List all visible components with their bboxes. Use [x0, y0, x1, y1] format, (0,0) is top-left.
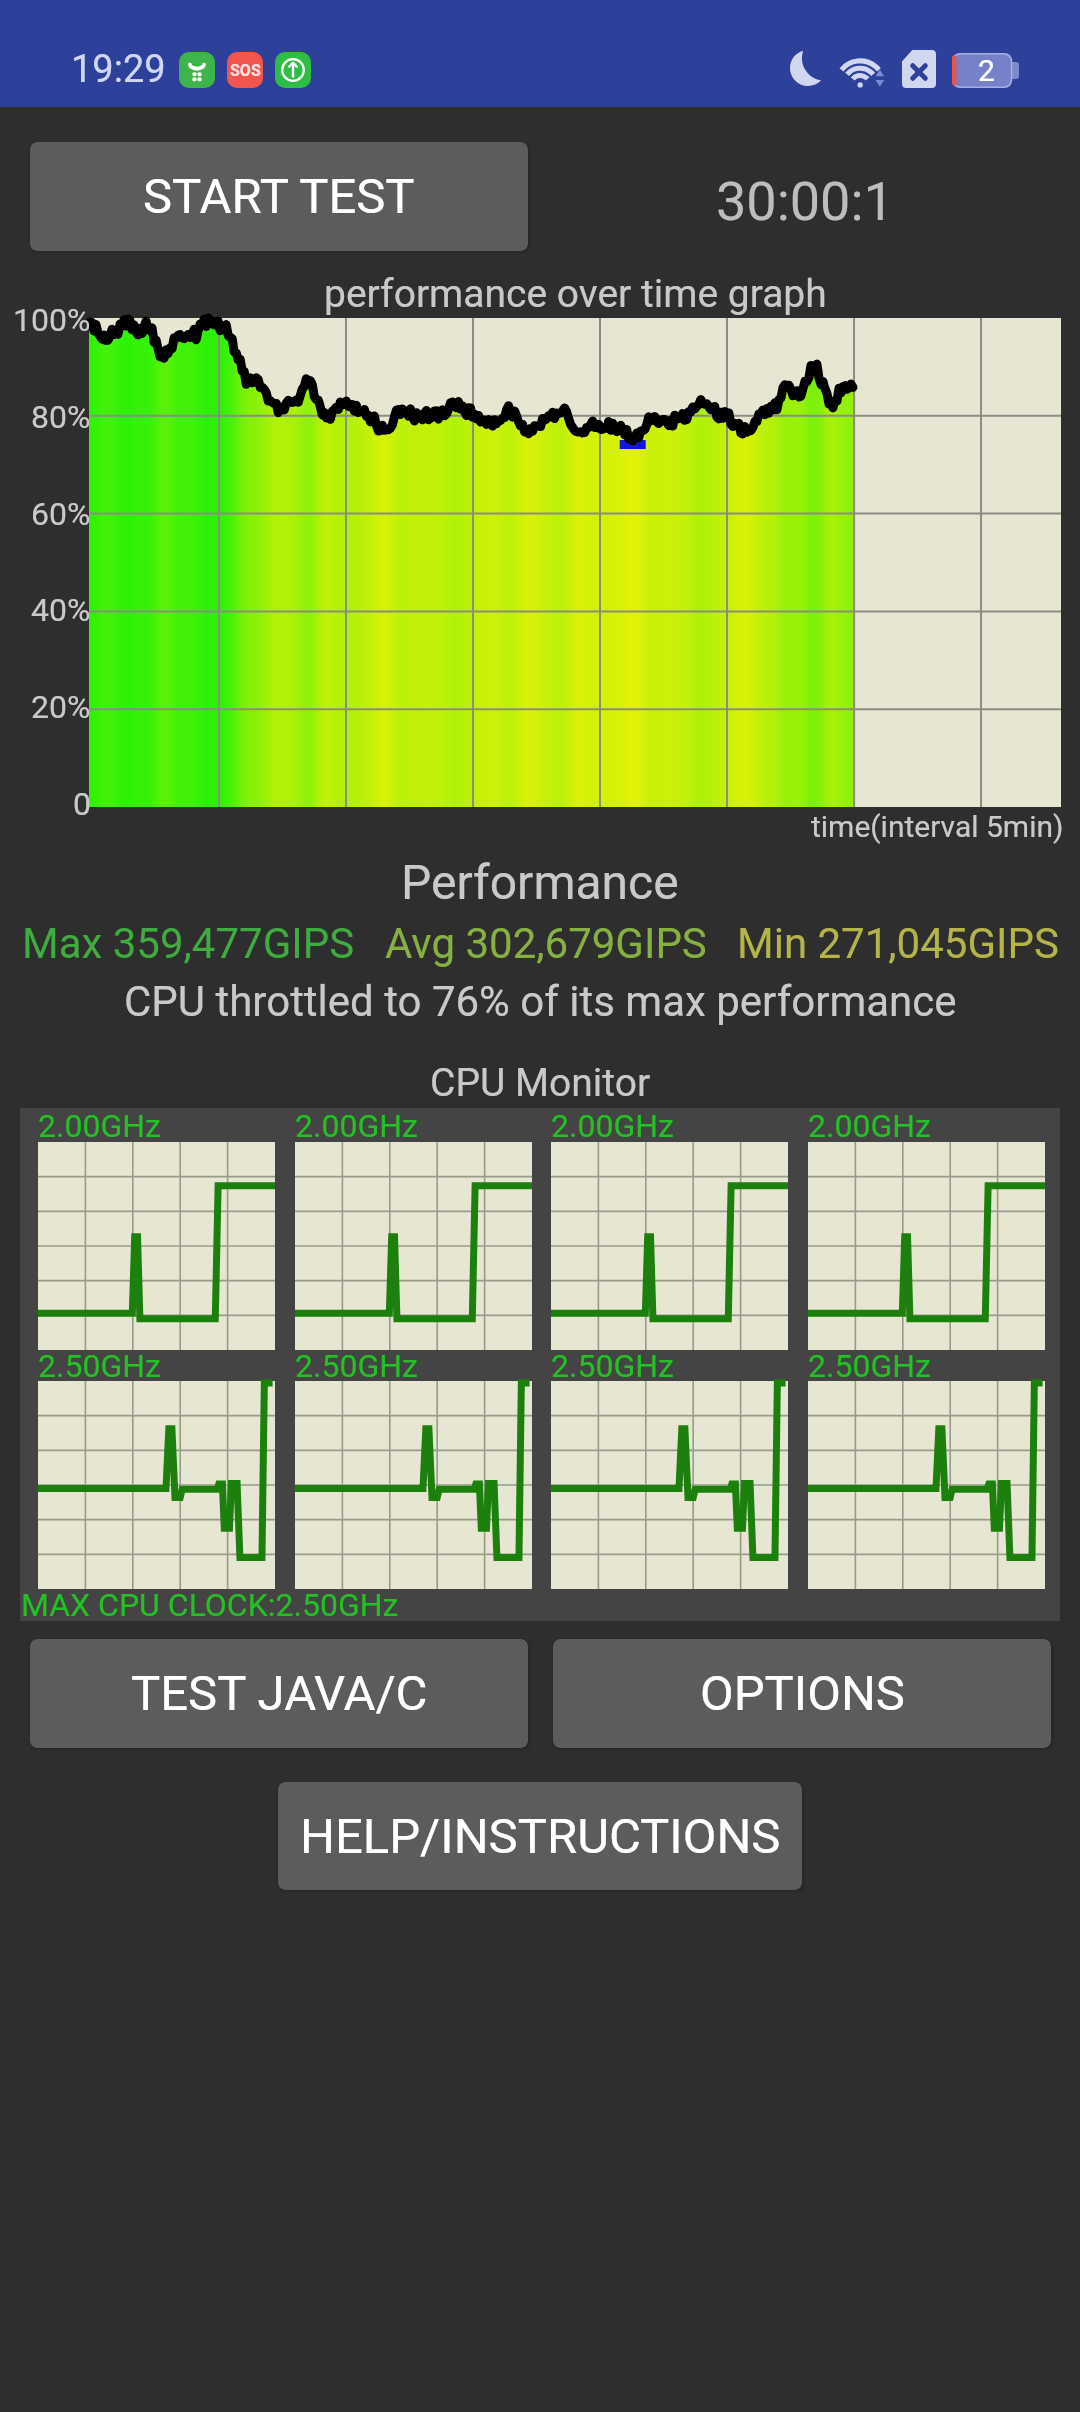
- staticText: CPU Monitor: [430, 1060, 651, 1106]
- staticText: 30:00:1: [716, 170, 894, 233]
- staticText: 2.50GHz: [38, 1347, 161, 1385]
- staticText: Min 271,045GIPS: [737, 919, 1059, 968]
- staticText: Max 359,477GIPS: [22, 919, 355, 968]
- staticText: 2.00GHz: [808, 1107, 931, 1145]
- staticText: 0: [73, 785, 91, 823]
- staticText: 2.00GHz: [38, 1107, 161, 1145]
- button[interactable]: OPTIONS: [553, 1639, 1051, 1748]
- staticText: 19:29: [71, 47, 166, 92]
- staticText: 100%: [13, 301, 91, 339]
- staticText: Performance: [401, 854, 679, 910]
- staticText: 80%: [31, 398, 91, 436]
- staticText: 2.00GHz: [551, 1107, 674, 1145]
- button[interactable]: TEST JAVA/C: [30, 1639, 528, 1748]
- staticText: 2.50GHz: [808, 1347, 931, 1385]
- staticText: SOS: [230, 61, 261, 80]
- staticText: CPU throttled to 76% of its max performa…: [124, 977, 957, 1026]
- staticText: START TEST: [143, 168, 415, 225]
- staticText: 2.50GHz: [295, 1347, 418, 1385]
- staticText: 2: [978, 53, 995, 88]
- staticText: 60%: [31, 495, 91, 533]
- staticText: Avg 302,679GIPS: [385, 919, 707, 968]
- staticText: TEST JAVA/C: [131, 1665, 428, 1722]
- staticText: OPTIONS: [700, 1665, 905, 1722]
- staticText: 20%: [31, 688, 91, 726]
- button[interactable]: HELP/INSTRUCTIONS: [278, 1782, 802, 1890]
- staticText: time(interval 5min): [811, 809, 1064, 844]
- staticText: 2.00GHz: [295, 1107, 418, 1145]
- staticText: 2.50GHz: [551, 1347, 674, 1385]
- staticText: 40%: [31, 591, 91, 629]
- staticText: MAX CPU CLOCK:2.50GHz: [21, 1586, 399, 1624]
- staticText: HELP/INSTRUCTIONS: [300, 1808, 781, 1865]
- staticText: performance over time graph: [324, 271, 827, 317]
- button[interactable]: START TEST: [30, 142, 528, 251]
